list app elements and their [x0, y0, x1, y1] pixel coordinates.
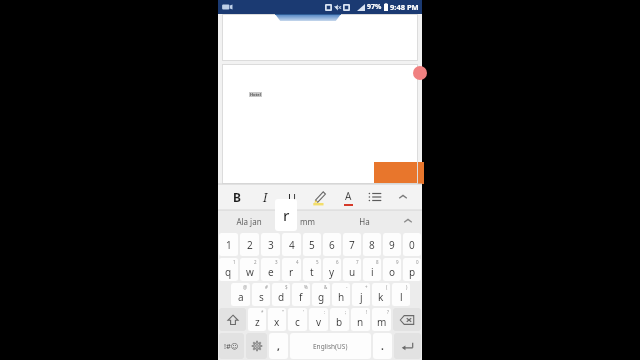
button[interactable]: Enter	[394, 333, 421, 359]
staticText: B	[233, 189, 241, 205]
staticText: 2	[247, 238, 253, 252]
staticText: m	[377, 315, 387, 329]
button[interactable]: 0	[403, 233, 421, 256]
button[interactable]: 4	[282, 258, 301, 281]
button[interactable]: Ha	[336, 210, 393, 232]
staticText: *	[261, 309, 264, 315]
button[interactable]: Underline	[281, 184, 303, 210]
button[interactable]: )	[392, 283, 410, 306]
staticText: ,	[277, 339, 280, 353]
button[interactable]: 2	[240, 233, 259, 256]
button[interactable]: 0	[403, 258, 421, 281]
staticText: A	[345, 189, 352, 203]
staticText: p	[409, 265, 416, 279]
button[interactable]: More	[392, 184, 414, 210]
staticText: r	[283, 205, 290, 225]
staticText: !#☺	[224, 341, 239, 351]
staticText: d	[278, 290, 285, 304]
button[interactable]: -	[332, 283, 350, 306]
staticText: 6	[329, 238, 335, 252]
staticText: )	[406, 284, 408, 290]
button[interactable]: &	[312, 283, 330, 306]
button[interactable]: 1	[219, 258, 238, 281]
staticText: 1	[226, 238, 232, 252]
button[interactable]: 7	[343, 233, 361, 256]
staticText: g	[318, 290, 325, 304]
staticText: +	[365, 284, 368, 290]
button[interactable]: Symbols	[219, 333, 244, 359]
button[interactable]: (	[372, 283, 390, 306]
staticText: ?	[387, 309, 389, 315]
button[interactable]: Font colour	[337, 184, 359, 210]
staticText: 9:48 PM	[390, 2, 419, 12]
button[interactable]: #	[252, 283, 270, 306]
button[interactable]: English(US)	[290, 333, 371, 359]
button[interactable]: Selection handle	[413, 66, 427, 80]
button[interactable]: 9	[383, 233, 401, 256]
button[interactable]: $	[272, 283, 290, 306]
staticText: !	[366, 309, 368, 315]
button[interactable]: Bulleted list	[364, 184, 386, 210]
staticText: r	[289, 265, 294, 279]
button[interactable]: Italic	[254, 184, 276, 210]
staticText: English(US)	[313, 342, 348, 351]
button[interactable]: %	[292, 283, 310, 306]
staticText: a	[238, 290, 244, 304]
staticText: 0	[409, 238, 415, 252]
button[interactable]: 8	[363, 258, 381, 281]
staticText: #	[265, 284, 268, 290]
button[interactable]: @	[231, 283, 250, 306]
button[interactable]: 6	[323, 233, 341, 256]
button[interactable]: 4	[282, 233, 301, 256]
staticText: i	[371, 265, 374, 279]
button[interactable]: 3	[261, 258, 280, 281]
staticText: Hotel	[250, 92, 261, 97]
staticText: z	[255, 315, 260, 329]
button[interactable]: *	[248, 308, 266, 331]
staticText: '	[303, 309, 305, 315]
button[interactable]: Ala jan	[218, 210, 279, 232]
staticText: 4	[289, 238, 295, 252]
staticText: o	[389, 265, 396, 279]
button[interactable]: "	[268, 308, 286, 331]
button[interactable]: 9	[383, 258, 401, 281]
staticText: t	[310, 265, 314, 279]
staticText: w	[246, 265, 254, 279]
staticText: U	[288, 190, 297, 205]
button[interactable]: 5	[303, 258, 321, 281]
button[interactable]: Expand suggestions	[393, 210, 422, 232]
button[interactable]: 2	[240, 258, 259, 281]
button[interactable]: .	[373, 333, 392, 359]
staticText: 7	[349, 238, 355, 252]
button[interactable]: '	[288, 308, 307, 331]
button[interactable]: :	[309, 308, 328, 331]
button[interactable]: !	[351, 308, 370, 331]
button[interactable]: Keyboard settings	[246, 333, 267, 359]
button[interactable]: 6	[323, 258, 341, 281]
button[interactable]: 3	[261, 233, 280, 256]
button[interactable]: ?	[372, 308, 391, 331]
button[interactable]: Bold	[226, 184, 248, 210]
button[interactable]: Highlight	[309, 184, 331, 210]
staticText: 6	[336, 259, 339, 265]
staticText: 97%	[367, 2, 382, 12]
staticText: .	[381, 339, 384, 353]
button[interactable]: ;	[330, 308, 349, 331]
staticText: 3	[268, 238, 274, 252]
staticText: 5	[316, 259, 319, 265]
button[interactable]: mm	[279, 210, 336, 232]
staticText: c	[295, 315, 300, 329]
button[interactable]: 8	[363, 233, 381, 256]
staticText: k	[378, 290, 384, 304]
button[interactable]: Shift	[219, 308, 246, 331]
button[interactable]: +	[352, 283, 370, 306]
staticText: 2	[254, 259, 257, 265]
button[interactable]: ,	[269, 333, 288, 359]
button[interactable]: 5	[303, 233, 321, 256]
staticText: "	[282, 309, 284, 315]
button[interactable]: 7	[343, 258, 361, 281]
staticText: :	[324, 309, 326, 315]
button[interactable]: Backspace	[393, 308, 421, 331]
button[interactable]: 1	[219, 233, 238, 256]
staticText: Ha	[359, 216, 370, 227]
